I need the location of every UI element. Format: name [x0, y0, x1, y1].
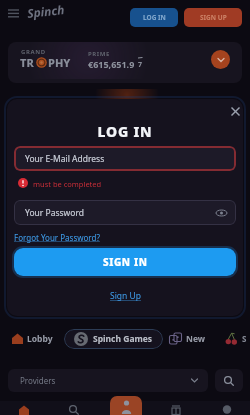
button[interactable]: LOG IN — [130, 8, 178, 27]
button[interactable] — [231, 107, 240, 116]
staticText: LOG IN — [7, 122, 243, 141]
button[interactable]: Spinch Games — [64, 329, 163, 349]
staticText: Your Password — [25, 207, 84, 219]
button[interactable]: Forgot Your Password? — [14, 232, 100, 243]
button[interactable]: SIGN IN — [14, 248, 236, 276]
staticText: Providers — [20, 375, 56, 386]
button[interactable]: Lobby — [12, 328, 53, 349]
button[interactable]: Your Password — [14, 200, 236, 225]
staticText: S — [242, 333, 247, 344]
staticText: SIGN IN — [103, 255, 148, 269]
button[interactable]: Providers — [8, 369, 208, 392]
button[interactable]: SIGN UP — [184, 8, 242, 27]
button[interactable]: S — [225, 328, 247, 349]
staticText: New — [186, 333, 206, 345]
staticText: €615,651.9 — [88, 58, 135, 70]
button[interactable] — [8, 9, 19, 18]
staticText: Spinch — [26, 1, 66, 21]
button[interactable]: Sign Up — [110, 290, 141, 302]
staticText: SIGN UP — [200, 13, 227, 22]
button[interactable] — [14, 401, 34, 415]
staticText: must be completed — [33, 179, 102, 189]
staticText: Your E-Mail Address — [25, 153, 105, 165]
button[interactable] — [211, 50, 230, 69]
button[interactable] — [64, 401, 84, 415]
button[interactable]: Your E-Mail Address — [14, 146, 236, 171]
button[interactable] — [217, 401, 237, 415]
staticText: Spinch Games — [93, 333, 153, 345]
staticText: 7 — [138, 60, 143, 70]
button[interactable] — [215, 369, 243, 392]
button[interactable] — [166, 401, 186, 415]
button[interactable] — [110, 396, 142, 415]
staticText: LOG IN — [143, 13, 166, 22]
staticText: Lobby — [27, 333, 53, 345]
staticText: PHY — [48, 55, 71, 70]
staticText: PRIME — [88, 50, 111, 58]
button[interactable]: New — [169, 328, 206, 349]
staticText: TR — [20, 55, 34, 70]
staticText: GRAND — [21, 48, 46, 56]
